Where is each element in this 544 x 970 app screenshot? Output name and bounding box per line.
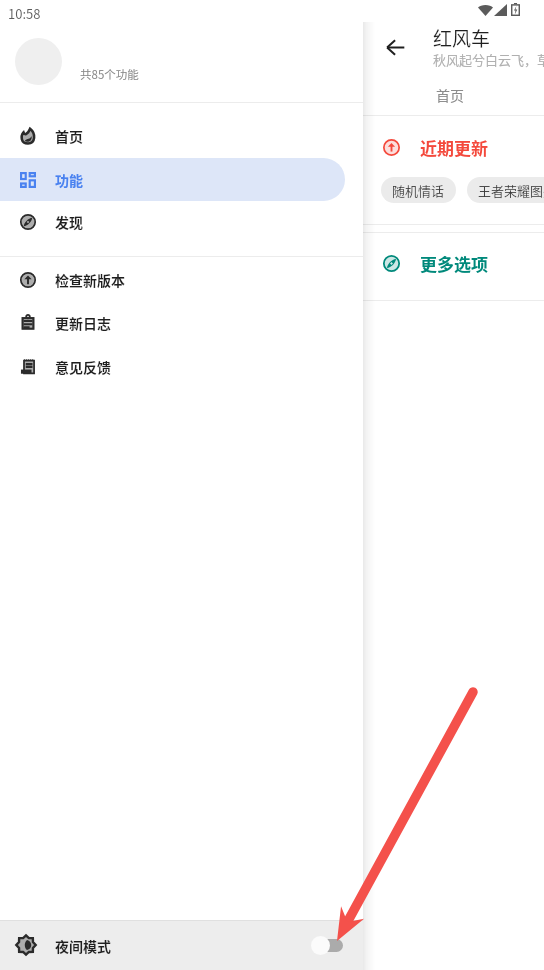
staticText: 夜间模式 xyxy=(55,936,111,956)
staticText: 共85个功能 xyxy=(80,66,139,83)
staticText: 功能 xyxy=(55,170,83,190)
button[interactable]: 更新日志 xyxy=(0,301,345,344)
staticText: 检查新版本 xyxy=(55,270,125,290)
staticText: 发现 xyxy=(55,212,83,232)
staticText: 红风车 xyxy=(433,24,491,52)
button[interactable]: 王者荣耀图鉴 xyxy=(467,177,544,203)
staticText: 秋风起兮白云飞，草木黄落兮雁南归 xyxy=(433,50,544,69)
button[interactable]: 更多选项 xyxy=(383,244,544,282)
button[interactable]: 首页 xyxy=(408,78,492,112)
button[interactable]: 发现 xyxy=(0,200,345,243)
button[interactable]: 功能 xyxy=(0,158,345,201)
button[interactable]: Back xyxy=(371,23,419,71)
staticText: 更新日志 xyxy=(55,313,111,333)
staticText: 意见反馈 xyxy=(55,357,111,377)
button[interactable]: 夜间模式 xyxy=(0,920,363,970)
staticText: 10:58 xyxy=(8,4,41,23)
staticText: 首页 xyxy=(55,126,83,146)
staticText: 近期更新 xyxy=(420,135,488,160)
button[interactable]: 检查新版本 xyxy=(0,258,345,301)
button[interactable]: 首页 xyxy=(0,114,345,157)
button[interactable]: 意见反馈 xyxy=(0,345,345,388)
staticText: 王者荣耀图鉴 xyxy=(478,181,544,200)
button[interactable]: 近期更新 xyxy=(383,128,544,166)
staticText: 首页 xyxy=(436,85,464,105)
staticText: 随机情话 xyxy=(392,181,445,200)
staticText: 更多选项 xyxy=(420,251,488,276)
button[interactable]: 随机情话 xyxy=(381,177,456,203)
